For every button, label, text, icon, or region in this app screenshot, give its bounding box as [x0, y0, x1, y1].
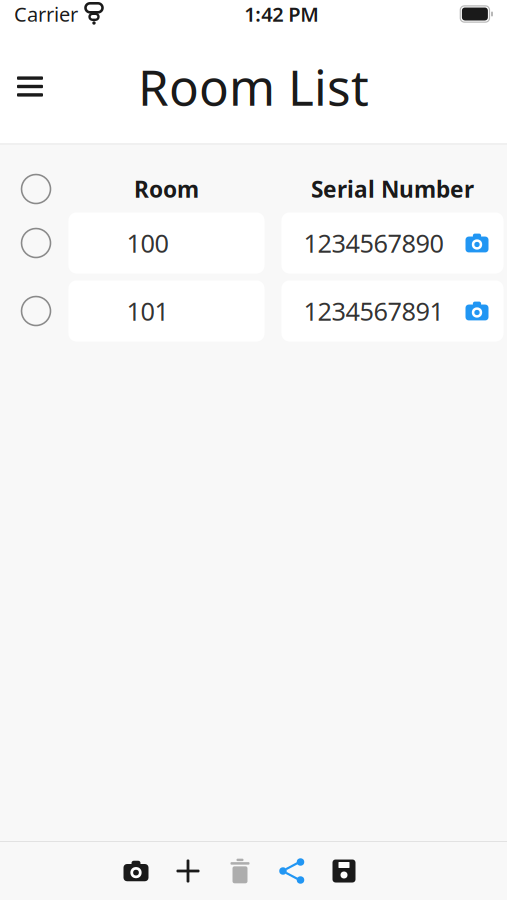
button[interactable]: Add room: [162, 843, 214, 899]
button[interactable]: Select row 100: [3, 212, 68, 273]
button[interactable]: Share: [266, 843, 318, 899]
staticText: Room: [134, 174, 199, 204]
button[interactable]: Delete: [214, 843, 266, 899]
button[interactable]: Select row 101: [3, 280, 68, 341]
button[interactable]: Save: [318, 843, 370, 899]
staticText: Serial Number: [311, 174, 474, 204]
button[interactable]: 101: [68, 280, 264, 341]
button[interactable]: 100: [68, 212, 264, 273]
button[interactable]: 1234567890: [281, 212, 503, 273]
staticText: 1234567890: [303, 226, 443, 260]
staticText: 101: [126, 294, 168, 328]
button[interactable]: 1234567891: [281, 280, 503, 341]
staticText: Carrier: [14, 1, 78, 27]
staticText: Room List: [138, 54, 369, 119]
button[interactable]: Menu: [4, 62, 56, 110]
staticText: 1:42 PM: [244, 1, 319, 27]
button[interactable]: Take photo: [110, 843, 162, 899]
staticText: 1234567891: [303, 294, 443, 328]
staticText: 100: [126, 226, 168, 260]
